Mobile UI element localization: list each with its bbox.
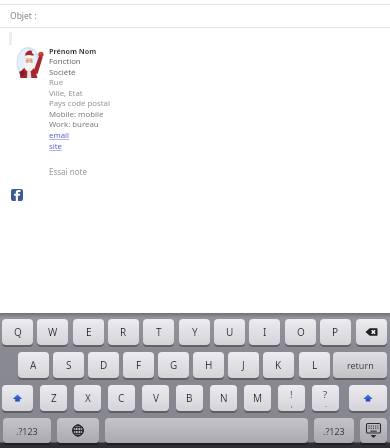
- staticText: ,: [291, 400, 293, 410]
- button[interactable]: K: [263, 352, 294, 378]
- staticText: Y: [192, 325, 198, 339]
- staticText: N: [220, 391, 228, 405]
- staticText: Essai note: [49, 166, 87, 177]
- staticText: R: [120, 325, 127, 339]
- button[interactable]: H: [193, 352, 224, 378]
- button[interactable]: J: [228, 352, 259, 378]
- staticText: !: [290, 388, 293, 401]
- staticText: Société: [49, 67, 76, 78]
- button[interactable]: F: [123, 352, 154, 378]
- button[interactable]: X: [74, 385, 101, 411]
- button[interactable]: Shift: [2, 385, 33, 411]
- button[interactable]: L: [299, 352, 330, 378]
- button[interactable]: Objet :: [0, 5, 390, 27]
- staticText: C: [118, 391, 125, 405]
- staticText: Work: bureau: [49, 119, 99, 130]
- staticText: X: [85, 391, 91, 405]
- staticText: .?123: [16, 425, 38, 437]
- staticText: W: [48, 325, 58, 339]
- staticText: V: [153, 391, 159, 405]
- button[interactable]: G: [158, 352, 189, 378]
- staticText: A: [30, 358, 37, 372]
- button[interactable]: U: [214, 319, 245, 345]
- button[interactable]: Shift: [349, 385, 387, 411]
- staticText: Q: [14, 325, 22, 339]
- staticText: F: [136, 358, 142, 372]
- button[interactable]: .?123: [3, 418, 51, 443]
- staticText: D: [100, 358, 108, 372]
- staticText: E: [86, 325, 92, 339]
- button[interactable]: V: [142, 385, 169, 411]
- staticText: Rue: [49, 77, 64, 88]
- staticText: email: [49, 130, 70, 141]
- button[interactable]: E: [73, 319, 104, 345]
- staticText: site: [49, 141, 62, 152]
- button[interactable]: D: [88, 352, 119, 378]
- staticText: B: [186, 391, 193, 405]
- button[interactable]: N: [210, 385, 237, 411]
- button[interactable]: S: [53, 352, 84, 378]
- staticText: Ville, Etat: [49, 88, 83, 99]
- staticText: U: [226, 325, 234, 339]
- staticText: ?: [323, 388, 328, 401]
- staticText: M: [253, 391, 263, 405]
- staticText: H: [205, 358, 213, 372]
- button[interactable]: return: [333, 352, 387, 378]
- button[interactable]: email: [49, 130, 70, 141]
- button[interactable]: R: [108, 319, 139, 345]
- staticText: L: [312, 358, 318, 372]
- button[interactable]: Backspace: [356, 319, 387, 345]
- staticText: Z: [51, 391, 57, 405]
- button[interactable]: P: [320, 319, 351, 345]
- button[interactable]: Y: [179, 319, 210, 345]
- staticText: P: [332, 325, 339, 339]
- button[interactable]: O: [285, 319, 316, 345]
- staticText: Mobile: mobile: [49, 109, 104, 120]
- button[interactable]: W: [37, 319, 68, 345]
- staticText: I: [263, 325, 267, 339]
- button[interactable]: ?: [312, 385, 339, 411]
- staticText: Objet :: [10, 10, 37, 22]
- staticText: Pays code postal: [49, 98, 110, 109]
- button[interactable]: Z: [40, 385, 67, 411]
- button[interactable]: B: [176, 385, 203, 411]
- button[interactable]: C: [108, 385, 135, 411]
- staticText: K: [275, 358, 282, 372]
- button[interactable]: !: [278, 385, 305, 411]
- staticText: Fonction: [49, 56, 81, 67]
- button[interactable]: Facebook: [11, 189, 23, 201]
- staticText: O: [297, 325, 305, 339]
- button[interactable]: A: [18, 352, 49, 378]
- button[interactable]: Switch keyboard: [57, 418, 99, 443]
- button[interactable]: I: [249, 319, 280, 345]
- staticText: .: [325, 400, 327, 410]
- staticText: S: [66, 358, 72, 372]
- button[interactable]: Q: [2, 319, 33, 345]
- staticText: T: [156, 325, 162, 339]
- staticText: Prénom Nom: [49, 46, 97, 56]
- staticText: return: [347, 359, 374, 371]
- button[interactable]: [105, 418, 308, 443]
- button[interactable]: Hide keyboard: [360, 418, 387, 443]
- button[interactable]: .?123: [314, 418, 354, 443]
- button[interactable]: T: [143, 319, 174, 345]
- staticText: .?123: [323, 425, 345, 437]
- button[interactable]: site: [49, 141, 62, 152]
- staticText: J: [242, 358, 245, 372]
- staticText: G: [170, 358, 178, 372]
- button[interactable]: M: [244, 385, 271, 411]
